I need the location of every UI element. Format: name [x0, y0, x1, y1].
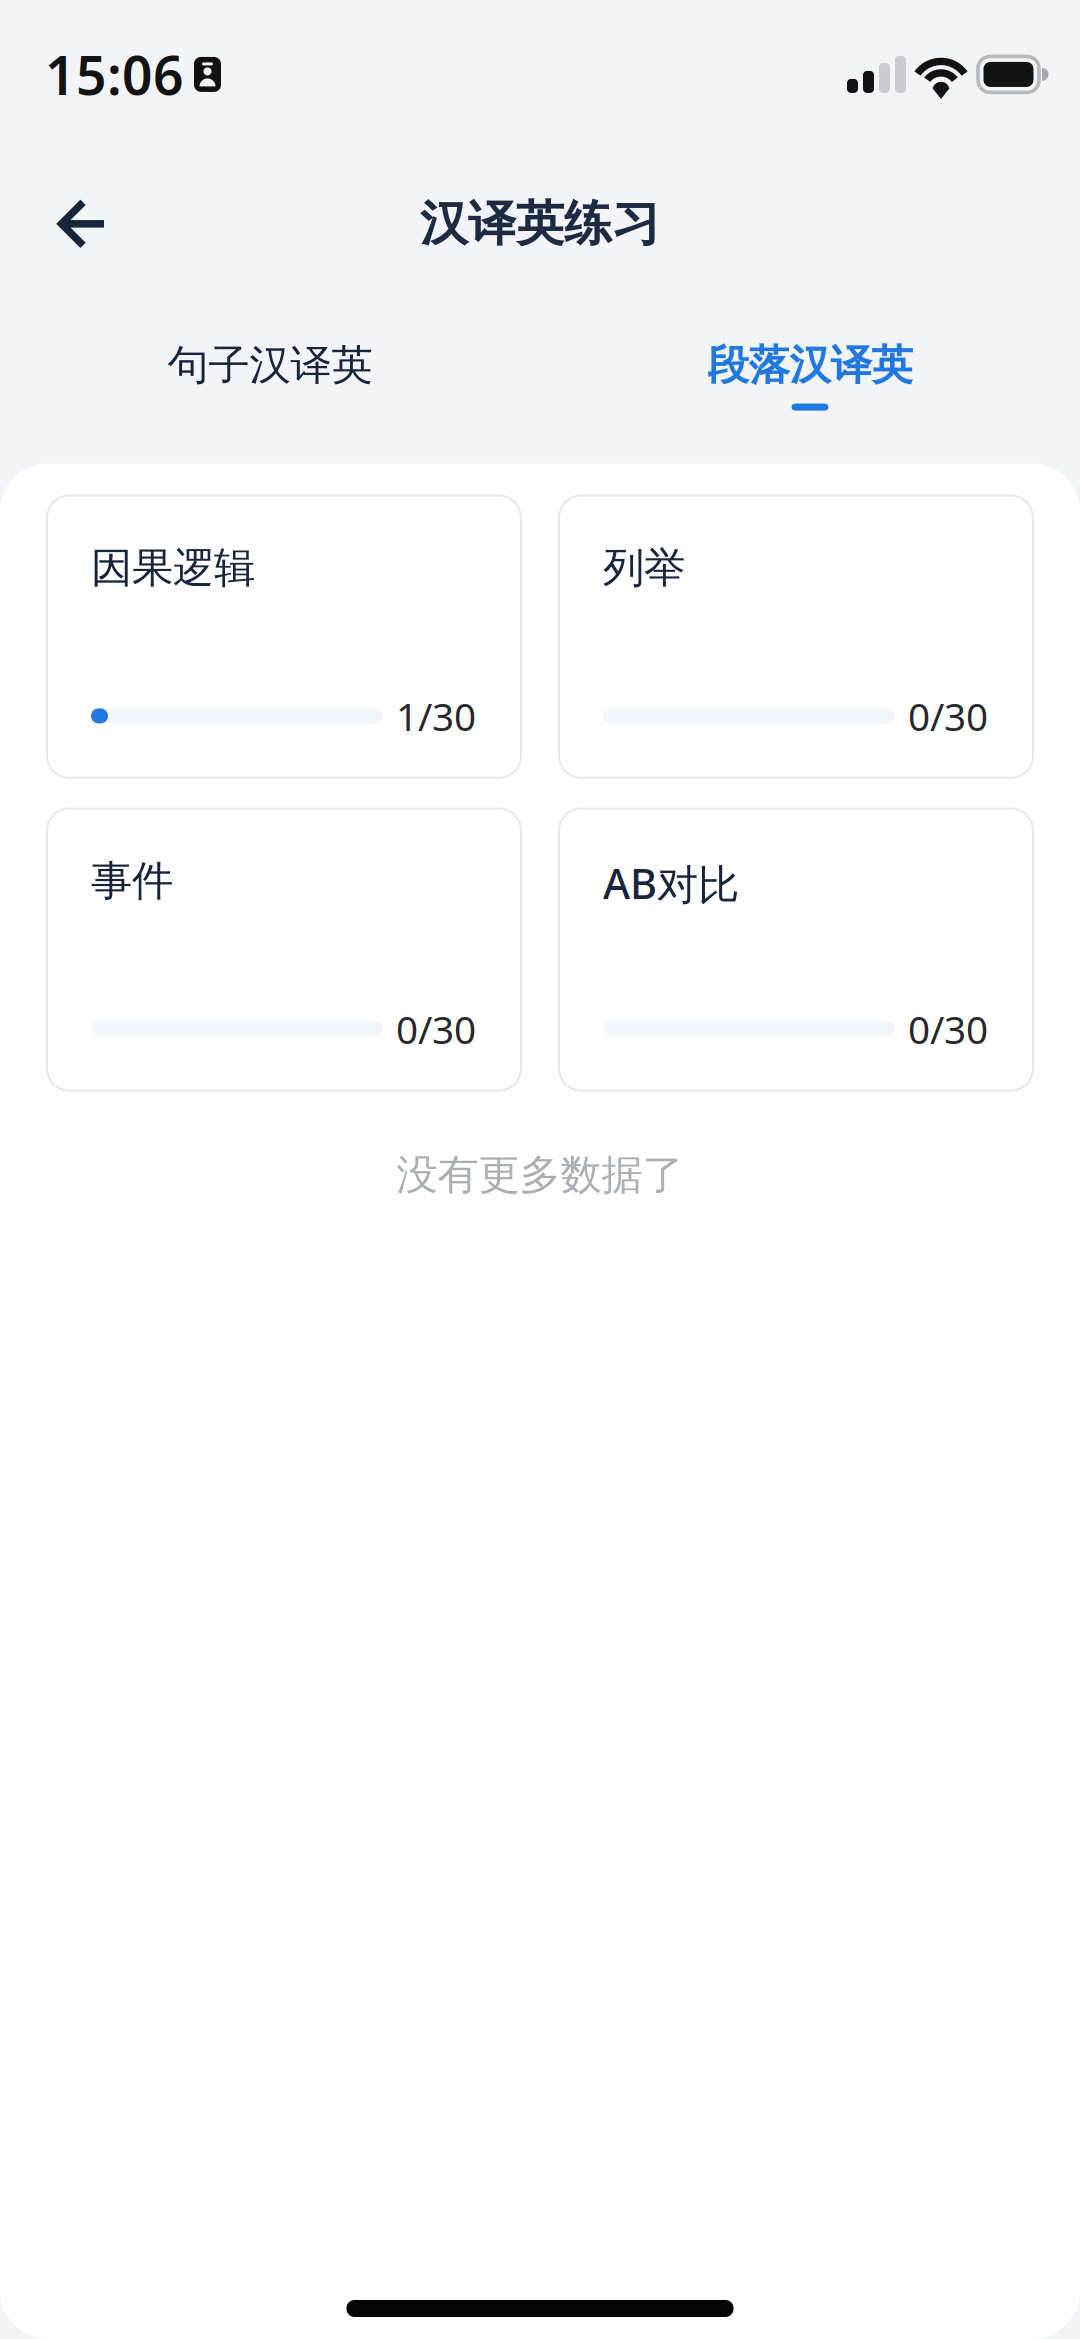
staticText: 15:06 — [45, 39, 184, 110]
staticText: 0/30 — [908, 1003, 988, 1054]
staticText: 列举 — [603, 543, 685, 593]
button[interactable]: 因果逻辑 — [47, 496, 521, 778]
staticText: 1/30 — [396, 690, 476, 741]
button[interactable]: 句子汉译英 — [0, 332, 540, 419]
staticText: 事件 — [91, 856, 173, 906]
staticText: 因果逻辑 — [91, 543, 255, 593]
staticText: 句子汉译英 — [167, 340, 372, 391]
staticText: AB对比 — [603, 856, 739, 911]
button[interactable]: 段落汉译英 — [540, 332, 1080, 419]
staticText: 没有更多数据了 — [396, 1150, 683, 1200]
staticText: 段落汉译英 — [707, 340, 912, 391]
button[interactable]: AB对比 — [559, 809, 1033, 1091]
staticText: 0/30 — [396, 1003, 476, 1054]
button[interactable]: 列举 — [559, 496, 1033, 778]
staticText: 汉译英练习 — [420, 194, 660, 253]
button[interactable]: Back — [0, 175, 137, 273]
staticText: 0/30 — [908, 690, 988, 741]
button[interactable]: 事件 — [47, 809, 521, 1091]
